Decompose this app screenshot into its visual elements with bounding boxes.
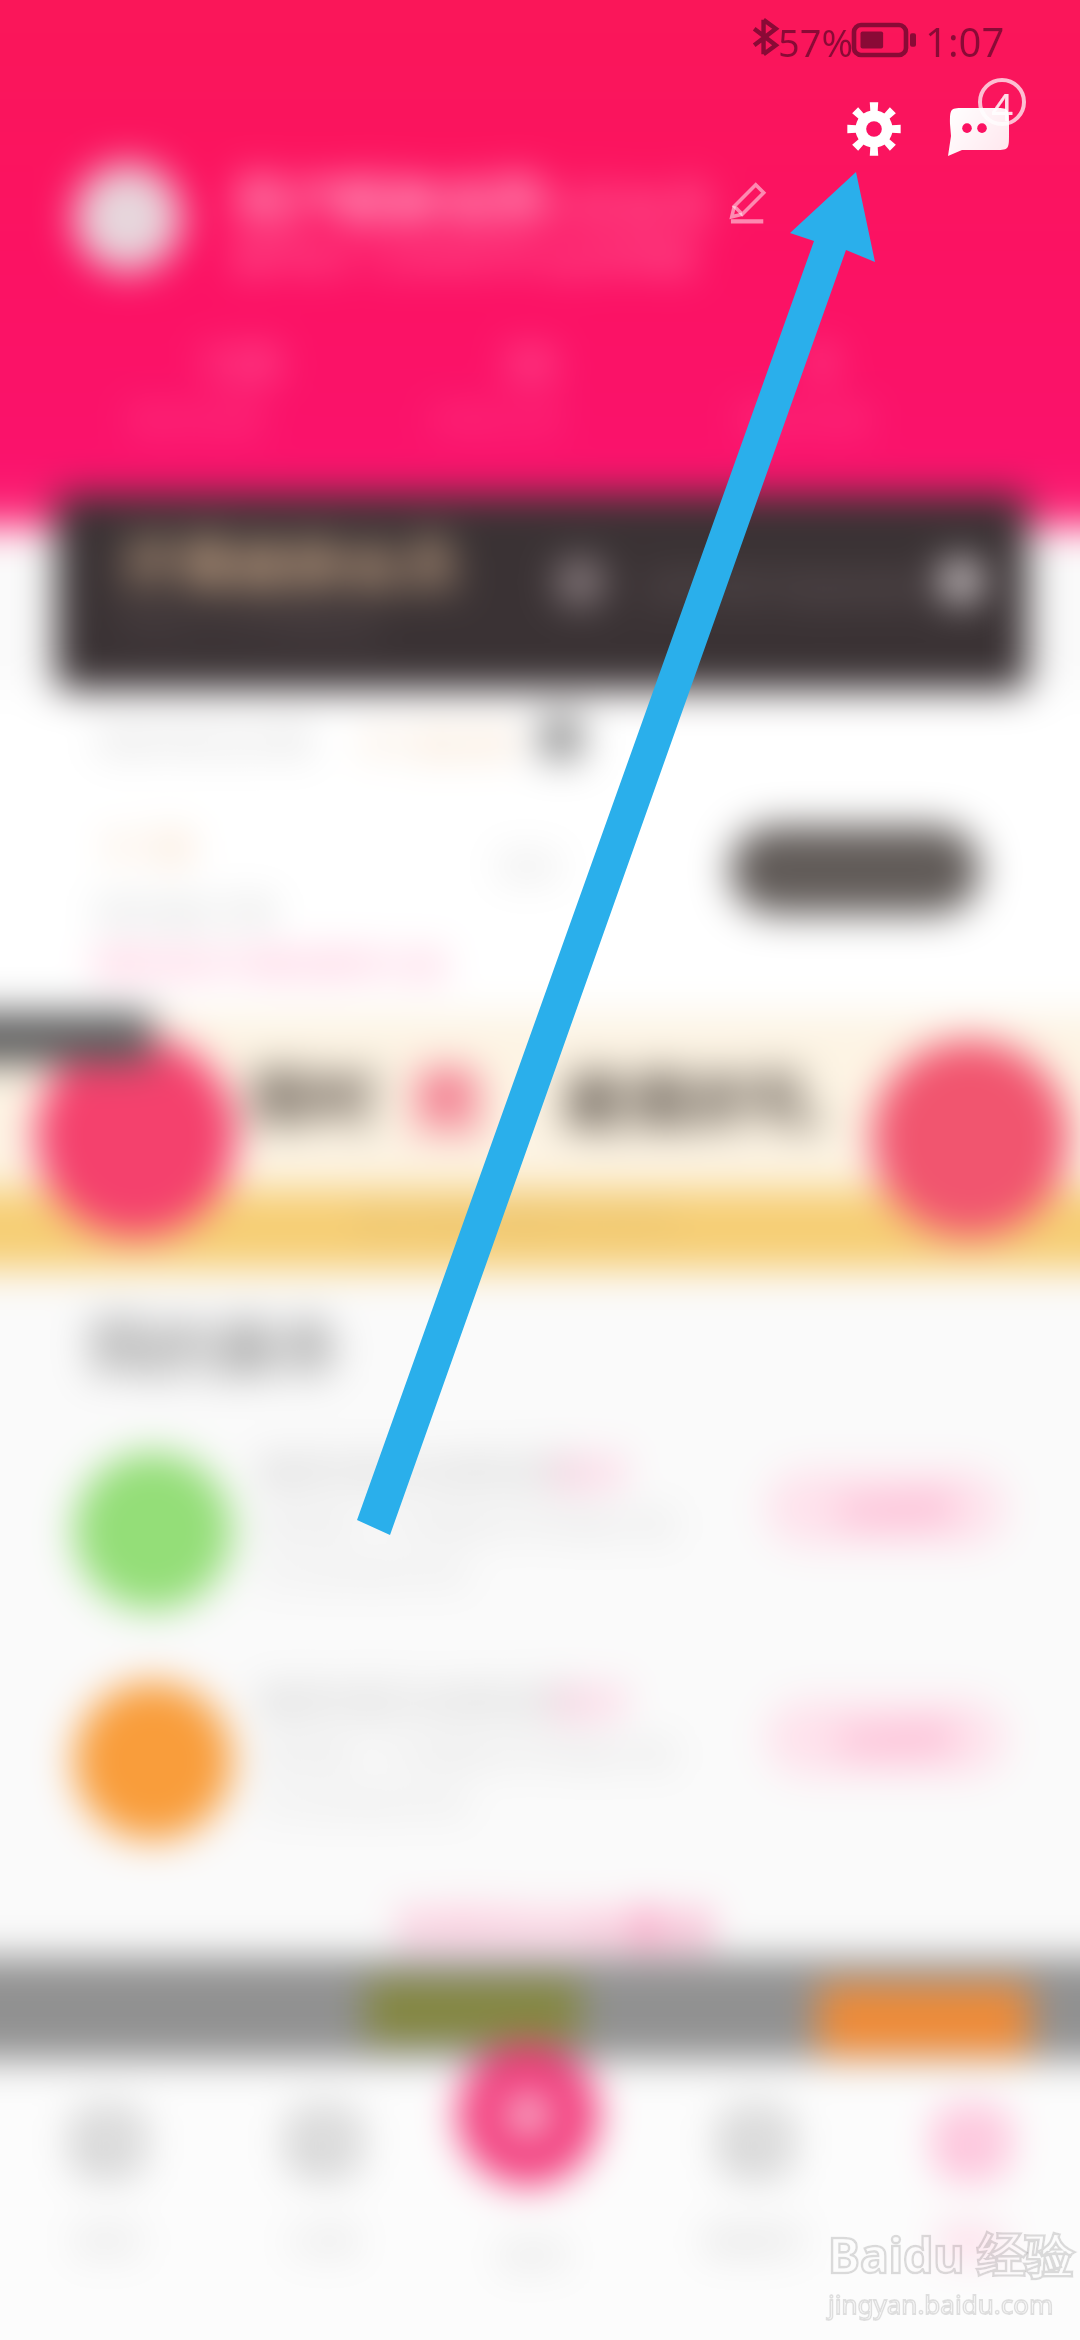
- button[interactable]: [766, 1470, 1006, 1546]
- staticText: 9: [808, 330, 836, 395]
- staticText: 我的: [864, 2220, 1080, 2263]
- staticText: 推荐: [552, 1450, 628, 1498]
- staticText: 已认证会员: [482, 176, 712, 234]
- staticText: Baidu 经验: [828, 2222, 1074, 2288]
- button[interactable]: Edit: [728, 181, 770, 223]
- button[interactable]: Publish: [448, 2035, 608, 2195]
- button[interactable]: 购物车: [648, 2080, 864, 2270]
- staticText: jingyan.baidu.com: [828, 2286, 1054, 2321]
- button[interactable]: [0, 1426, 1080, 1652]
- button[interactable]: 分类: [216, 2080, 432, 2270]
- staticText: ￥ 58: [100, 820, 192, 872]
- button[interactable]: [730, 826, 980, 914]
- staticText: 服务项目名称说明: [258, 1676, 578, 1726]
- staticText: 推荐: [552, 1680, 628, 1728]
- staticText: 尊享八大专属权益: [122, 604, 378, 644]
- button[interactable]: [74, 164, 182, 272]
- staticText: 开通超级会员: [120, 530, 456, 601]
- staticText: 每日签到领积分好礼: [356, 1198, 680, 1243]
- staticText: 用户昵称名字: [232, 170, 544, 236]
- button[interactable]: 首页: [0, 2080, 216, 2270]
- staticText: 账号ID 12345678 会员等级: [234, 230, 697, 282]
- staticText: 购物车: [648, 2220, 864, 2263]
- button[interactable]: Messages: [930, 68, 1034, 172]
- button[interactable]: [0, 1958, 1080, 2078]
- button[interactable]: 我的: [864, 2080, 1080, 2270]
- staticText: 更多: [630, 1902, 718, 1957]
- button[interactable]: [56, 494, 1028, 690]
- staticText: 1:07: [925, 14, 1005, 68]
- staticText: 57%: [778, 16, 854, 68]
- staticText: 查看更多服务: [396, 1902, 660, 1957]
- staticText: 抢: [412, 1056, 484, 1147]
- staticText: ￥128.00: [356, 716, 513, 768]
- staticText: 服务项目名称说明: [258, 1446, 578, 1496]
- staticText: 立即开通 享超值优惠: [640, 566, 918, 607]
- button[interactable]: [0, 1656, 1080, 1882]
- staticText: 36: [502, 330, 557, 395]
- button[interactable]: Settings: [822, 77, 926, 181]
- staticText: 我的优惠: [736, 398, 872, 441]
- button[interactable]: [766, 1700, 1006, 1776]
- staticText: 去使用: [838, 1716, 952, 1764]
- button[interactable]: [0, 1014, 1080, 1278]
- staticText: 这里是一行说明文字内容介绍: [258, 1504, 674, 1544]
- staticText: 4: [988, 80, 1016, 132]
- staticText: 去使用: [838, 1486, 952, 1534]
- staticText: 超值好礼: [562, 1060, 818, 1141]
- staticText: 我的服务: [86, 1308, 342, 1389]
- staticText: 限时: [250, 1060, 378, 1141]
- staticText: 128: [198, 330, 281, 395]
